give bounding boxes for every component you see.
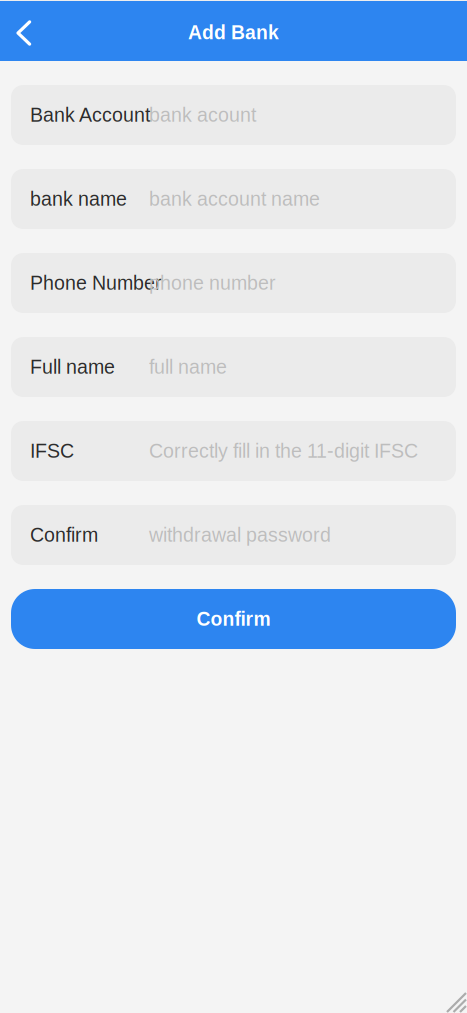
button[interactable]: Confirm [11,589,456,649]
staticText: Correctly fill in the 11-digit IFSC [149,440,418,462]
staticText: Confirm [30,524,98,546]
staticText: bank account name [149,188,320,210]
staticText: phone number [149,272,276,294]
button[interactable]: Back [0,1,44,61]
staticText: full name [149,356,227,378]
button[interactable]: Full name [11,337,456,397]
staticText: Full name [30,356,115,378]
button[interactable]: bank name [11,169,456,229]
staticText: Add Bank [188,22,279,43]
staticText: Confirm [196,608,270,630]
staticText: bank acount [149,104,256,126]
button[interactable]: Phone Number [11,253,456,313]
button[interactable]: Confirm [11,505,456,565]
button[interactable]: IFSC [11,421,456,481]
button[interactable]: Bank Account [11,85,456,145]
staticText: Phone Number [30,272,162,294]
staticText: Bank Account [30,104,150,126]
staticText: IFSC [30,440,74,462]
staticText: bank name [30,188,127,210]
staticText: withdrawal password [149,524,331,546]
